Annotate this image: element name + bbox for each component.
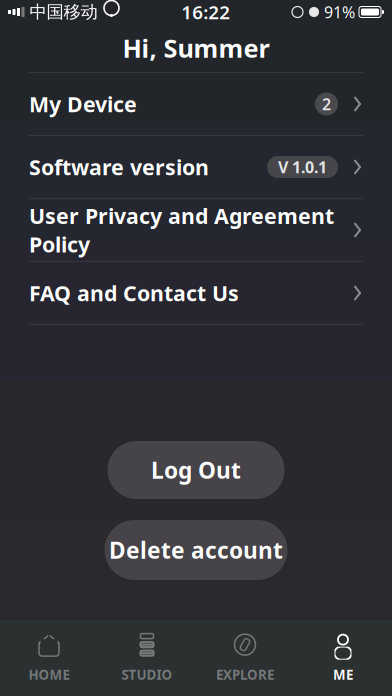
staticText: EXPLORE xyxy=(216,666,274,683)
button[interactable]: Delete account xyxy=(104,520,287,580)
staticText: User Privacy and Agreement Policy xyxy=(29,202,334,258)
button[interactable]: My Device xyxy=(0,73,392,135)
staticText: 91% xyxy=(324,1,355,23)
staticText: 中国移动 xyxy=(29,1,97,23)
staticText: STUDIO xyxy=(121,666,172,683)
staticText: FAQ and Contact Us xyxy=(29,279,239,307)
staticText: ME xyxy=(333,666,353,683)
staticText: HOME xyxy=(28,666,69,683)
button[interactable]: FAQ and Contact Us xyxy=(0,262,392,324)
staticText: V 1.0.1 xyxy=(278,156,327,178)
button[interactable]: User Privacy and Agreement Policy xyxy=(0,199,392,261)
button[interactable]: ME xyxy=(294,623,392,693)
staticText: 16:22 xyxy=(181,0,230,24)
staticText: My Device xyxy=(29,90,137,118)
button[interactable]: EXPLORE xyxy=(196,623,294,693)
button[interactable]: Software version xyxy=(0,136,392,198)
staticText: Software version xyxy=(29,153,209,181)
button[interactable]: Log Out xyxy=(107,441,284,499)
button[interactable]: HOME xyxy=(0,623,98,693)
staticText: Delete account xyxy=(109,535,283,565)
staticText: 2 xyxy=(322,93,331,115)
button[interactable]: STUDIO xyxy=(98,623,196,693)
staticText: Hi, Summer xyxy=(122,31,269,65)
staticText: Log Out xyxy=(151,455,241,485)
